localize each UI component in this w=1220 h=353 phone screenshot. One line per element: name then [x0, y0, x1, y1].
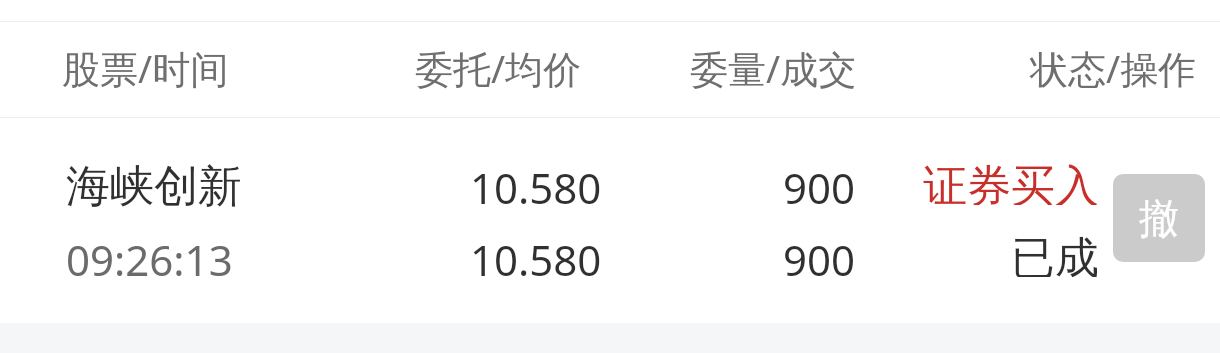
staticText: 海峡创新 — [66, 159, 242, 214]
button[interactable]: 状态/操作 — [985, 40, 1197, 96]
button[interactable]: 股票/时间 — [50, 40, 270, 96]
staticText: 证券买入 — [923, 159, 1099, 205]
staticText: 委托/均价 — [415, 42, 582, 94]
staticText: 已成 — [1011, 231, 1099, 277]
staticText: 09:26:13 — [66, 231, 233, 288]
staticText: 撤 — [1139, 193, 1179, 243]
button[interactable]: 委量/成交 — [645, 40, 857, 96]
staticText: 股票/时间 — [62, 42, 229, 94]
staticText: 900 — [783, 159, 856, 205]
staticText: 委量/成交 — [690, 42, 857, 94]
staticText: 10.580 — [470, 231, 602, 277]
staticText: 状态/操作 — [1030, 42, 1197, 94]
button[interactable]: 委托/均价 — [370, 40, 582, 96]
staticText: 10.580 — [470, 159, 602, 205]
staticText: 900 — [783, 231, 856, 277]
button[interactable]: 海峡创新 — [0, 118, 1220, 323]
button[interactable]: 撤单 — [1113, 174, 1205, 262]
